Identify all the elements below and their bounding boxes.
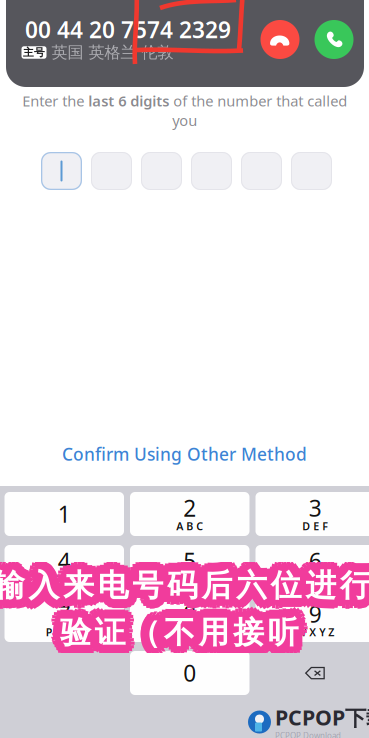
- staticText: 输入来电号码后六位进行: [0, 568, 369, 606]
- button[interactable]: 4: [4, 545, 124, 589]
- staticText: 输入来电号码后六位进行: [0, 564, 369, 602]
- button[interactable]: 5: [130, 545, 249, 589]
- button[interactable]: 0: [130, 651, 249, 695]
- button[interactable]: [291, 152, 332, 190]
- staticText: 输入来电号码后六位进行: [0, 567, 368, 604]
- staticText: 验证（不用接听: [64, 605, 302, 643]
- staticText: 验证（不用接听: [64, 622, 302, 660]
- staticText: 输入来电号码后六位进行: [0, 563, 363, 601]
- staticText: 验证（不用接听: [55, 614, 293, 651]
- staticText: 00 44 20 7574 2329: [25, 14, 231, 44]
- staticText: A B C: [176, 519, 203, 533]
- staticText: M N O: [299, 572, 331, 586]
- button[interactable]: [241, 152, 282, 190]
- staticText: 输入来电号码后六位进行: [0, 563, 367, 600]
- staticText: 验证（不用接听: [62, 619, 301, 656]
- staticText: D E F: [302, 519, 328, 533]
- button[interactable]: [91, 152, 132, 190]
- button[interactable]: 1: [4, 492, 124, 536]
- button[interactable]: Delete: [255, 651, 369, 695]
- staticText: 输入来电号码后六位进行: [0, 569, 369, 607]
- button[interactable]: 3: [255, 492, 369, 536]
- staticText: 6: [309, 546, 322, 576]
- staticText: G H I: [51, 572, 77, 586]
- staticText: 1: [58, 499, 71, 529]
- staticText: 验证（不用接听: [60, 623, 299, 660]
- staticText: 验证（不用接听: [59, 616, 298, 654]
- staticText: 输入来电号码后六位进行: [0, 558, 369, 596]
- staticText: 验证（不用接听: [62, 613, 301, 650]
- staticText: 验证（不用接听: [69, 614, 308, 651]
- staticText: 验证（不用接听: [62, 609, 301, 646]
- staticText: 验证（不用接听: [57, 605, 295, 643]
- staticText: PCPOP Download: [275, 730, 341, 738]
- staticText: T U V: [176, 625, 203, 639]
- staticText: 验证（不用接听: [54, 620, 292, 658]
- button[interactable]: Answer call: [314, 20, 353, 59]
- staticText: 输入来电号码后六位进行: [0, 560, 369, 598]
- staticText: 英国 英格兰 伦敦: [51, 43, 173, 62]
- button[interactable]: 8: [130, 598, 249, 642]
- staticText: 输入来电号码后六位进行: [0, 571, 367, 608]
- staticText: 输入来电号码后六位进行: [0, 565, 369, 603]
- staticText: 验证（不用接听: [58, 615, 296, 652]
- staticText: PCPOP下载: [275, 703, 369, 731]
- staticText: 输入来电号码后六位进行: [0, 558, 368, 596]
- staticText: 3: [309, 493, 322, 523]
- staticText: 输入来电号码后六位进行: [0, 567, 365, 604]
- staticText: 验证（不用接听: [59, 611, 298, 649]
- staticText: 输入来电号码后六位进行: [0, 568, 369, 606]
- staticText: 验证（不用接听: [60, 614, 299, 651]
- staticText: 输入来电号码后六位进行: [0, 566, 369, 603]
- staticText: 输入来电号码后六位进行: [0, 569, 366, 606]
- staticText: 输入来电号码后六位进行: [0, 562, 369, 599]
- button[interactable]: 9: [255, 598, 369, 642]
- staticText: 输入来电号码后六位进行: [0, 561, 369, 599]
- staticText: 验证（不用接听: [67, 607, 305, 645]
- staticText: 输入来电号码后六位进行: [0, 569, 369, 607]
- staticText: 验证（不用接听: [68, 617, 307, 655]
- staticText: P Q R S: [46, 625, 83, 639]
- button[interactable]: Decline call: [260, 20, 299, 59]
- staticText: 验证（不用接听: [51, 614, 290, 651]
- button[interactable]: [191, 152, 232, 190]
- staticText: 验证（不用接听: [57, 622, 295, 660]
- button[interactable]: 6: [255, 545, 369, 589]
- staticText: 验证（不用接听: [60, 619, 299, 657]
- staticText: 验证（不用接听: [65, 616, 304, 653]
- staticText: 验证（不用接听: [58, 619, 297, 656]
- staticText: 验证（不用接听: [58, 609, 297, 646]
- staticText: 验证（不用接听: [52, 617, 290, 655]
- staticText: 验证（不用接听: [52, 610, 290, 648]
- staticText: 验证（不用接听: [66, 614, 304, 651]
- staticText: 输入来电号码后六位进行: [0, 564, 369, 602]
- staticText: 9: [309, 599, 322, 629]
- staticText: 输入来电号码后六位进行: [0, 570, 363, 608]
- button[interactable]: 7: [4, 598, 124, 642]
- button[interactable]: Confirm Using Other Method: [0, 437, 369, 471]
- staticText: 验证（不用接听: [68, 610, 307, 648]
- staticText: 验证（不用接听: [60, 608, 299, 646]
- staticText: 4: [58, 546, 71, 576]
- staticText: 输入来电号码后六位进行: [0, 575, 369, 613]
- staticText: 验证（不用接听: [54, 607, 292, 645]
- staticText: 输入来电号码后六位进行: [2, 570, 369, 608]
- staticText: Confirm Using Other Method: [62, 442, 307, 465]
- staticText: 7: [58, 599, 71, 629]
- staticText: J K L: [179, 572, 201, 586]
- staticText: 输入来电号码后六位进行: [0, 564, 369, 602]
- staticText: 验证（不用接听: [58, 612, 297, 650]
- staticText: 输入来电号码后六位进行: [0, 567, 369, 604]
- staticText: 验证（不用接听: [65, 612, 304, 649]
- staticText: 输入来电号码后六位进行: [0, 566, 369, 603]
- staticText: 输入来电号码后六位进行: [0, 565, 366, 602]
- staticText: 0: [183, 658, 196, 688]
- staticText: 输入来电号码后六位进行: [0, 563, 369, 600]
- staticText: 输入来电号码后六位进行: [0, 569, 369, 607]
- staticText: 验证（不用接听: [58, 613, 296, 650]
- button[interactable]: 2: [130, 492, 249, 536]
- staticText: 5: [183, 546, 196, 576]
- staticText: 输入来电号码后六位进行: [0, 576, 369, 613]
- button[interactable]: [141, 152, 182, 190]
- button[interactable]: [41, 152, 82, 190]
